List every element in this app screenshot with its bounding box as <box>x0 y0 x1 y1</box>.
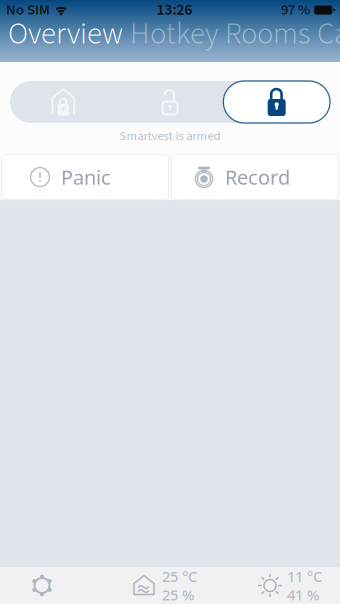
button[interactable]: Record <box>171 154 339 200</box>
button[interactable] <box>223 81 330 123</box>
staticText: Rooms <box>225 12 310 56</box>
button[interactable]: 11 °C <box>257 567 340 604</box>
button[interactable] <box>117 81 223 123</box>
button[interactable]: Settings <box>12 567 72 604</box>
staticText: 25 % <box>162 585 194 604</box>
button[interactable]: Panic <box>1 154 169 200</box>
button[interactable]: Hotkey <box>130 12 218 56</box>
staticText: Hotkey <box>130 12 218 56</box>
button[interactable] <box>10 81 117 123</box>
staticText: Panic <box>61 164 111 190</box>
staticText: 41 % <box>287 585 319 604</box>
staticText: 13:26 <box>156 0 192 21</box>
staticText: Record <box>225 164 290 190</box>
button[interactable]: 25 °C <box>132 567 197 604</box>
staticText: Overview <box>8 12 123 56</box>
staticText: No SIM <box>6 0 50 20</box>
staticText: Smartvest is armed <box>119 127 220 145</box>
button[interactable]: Overview <box>8 12 123 56</box>
staticText: Ca <box>317 12 340 56</box>
button[interactable]: Rooms <box>225 12 310 56</box>
staticText: 25 °C <box>162 566 197 586</box>
button[interactable]: Ca <box>317 12 340 56</box>
staticText: 11 °C <box>287 566 322 586</box>
staticText: 97 % <box>281 0 310 20</box>
